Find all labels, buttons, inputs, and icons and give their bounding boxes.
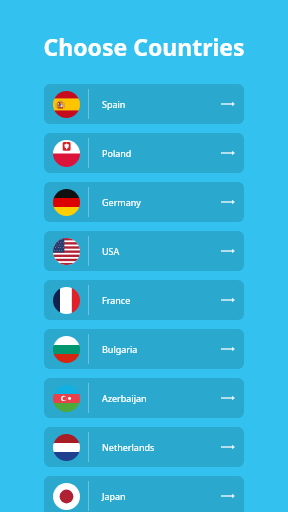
staticText: Netherlands [102, 441, 155, 453]
other: Japan [221, 491, 235, 501]
button[interactable]: Bulgaria [44, 329, 244, 369]
button[interactable]: Azerbaijan [44, 378, 244, 418]
other: Netherlands [221, 442, 235, 452]
staticText: Azerbaijan [102, 392, 147, 404]
staticText: Spain [102, 98, 126, 110]
staticText: Poland [102, 147, 132, 159]
staticText: Bulgaria [102, 343, 138, 355]
other: Poland [221, 148, 235, 158]
button[interactable]: Netherlands [44, 427, 244, 467]
button[interactable]: France [44, 280, 244, 320]
staticText: USA [102, 245, 120, 257]
button[interactable]: Germany [44, 182, 244, 222]
button[interactable]: Spain [44, 84, 244, 124]
other: Spain [221, 99, 235, 109]
button[interactable]: Japan [44, 476, 244, 512]
other: Bulgaria [221, 344, 235, 354]
other: USA [221, 246, 235, 256]
staticText: Japan [102, 490, 126, 502]
staticText: Germany [102, 196, 141, 208]
other: Germany [221, 197, 235, 207]
button[interactable]: Poland [44, 133, 244, 173]
button[interactable]: USA [44, 231, 244, 271]
staticText: France [102, 294, 131, 306]
other: Azerbaijan [221, 393, 235, 403]
staticText: Choose Countries [0, 31, 288, 62]
other: France [221, 295, 235, 305]
